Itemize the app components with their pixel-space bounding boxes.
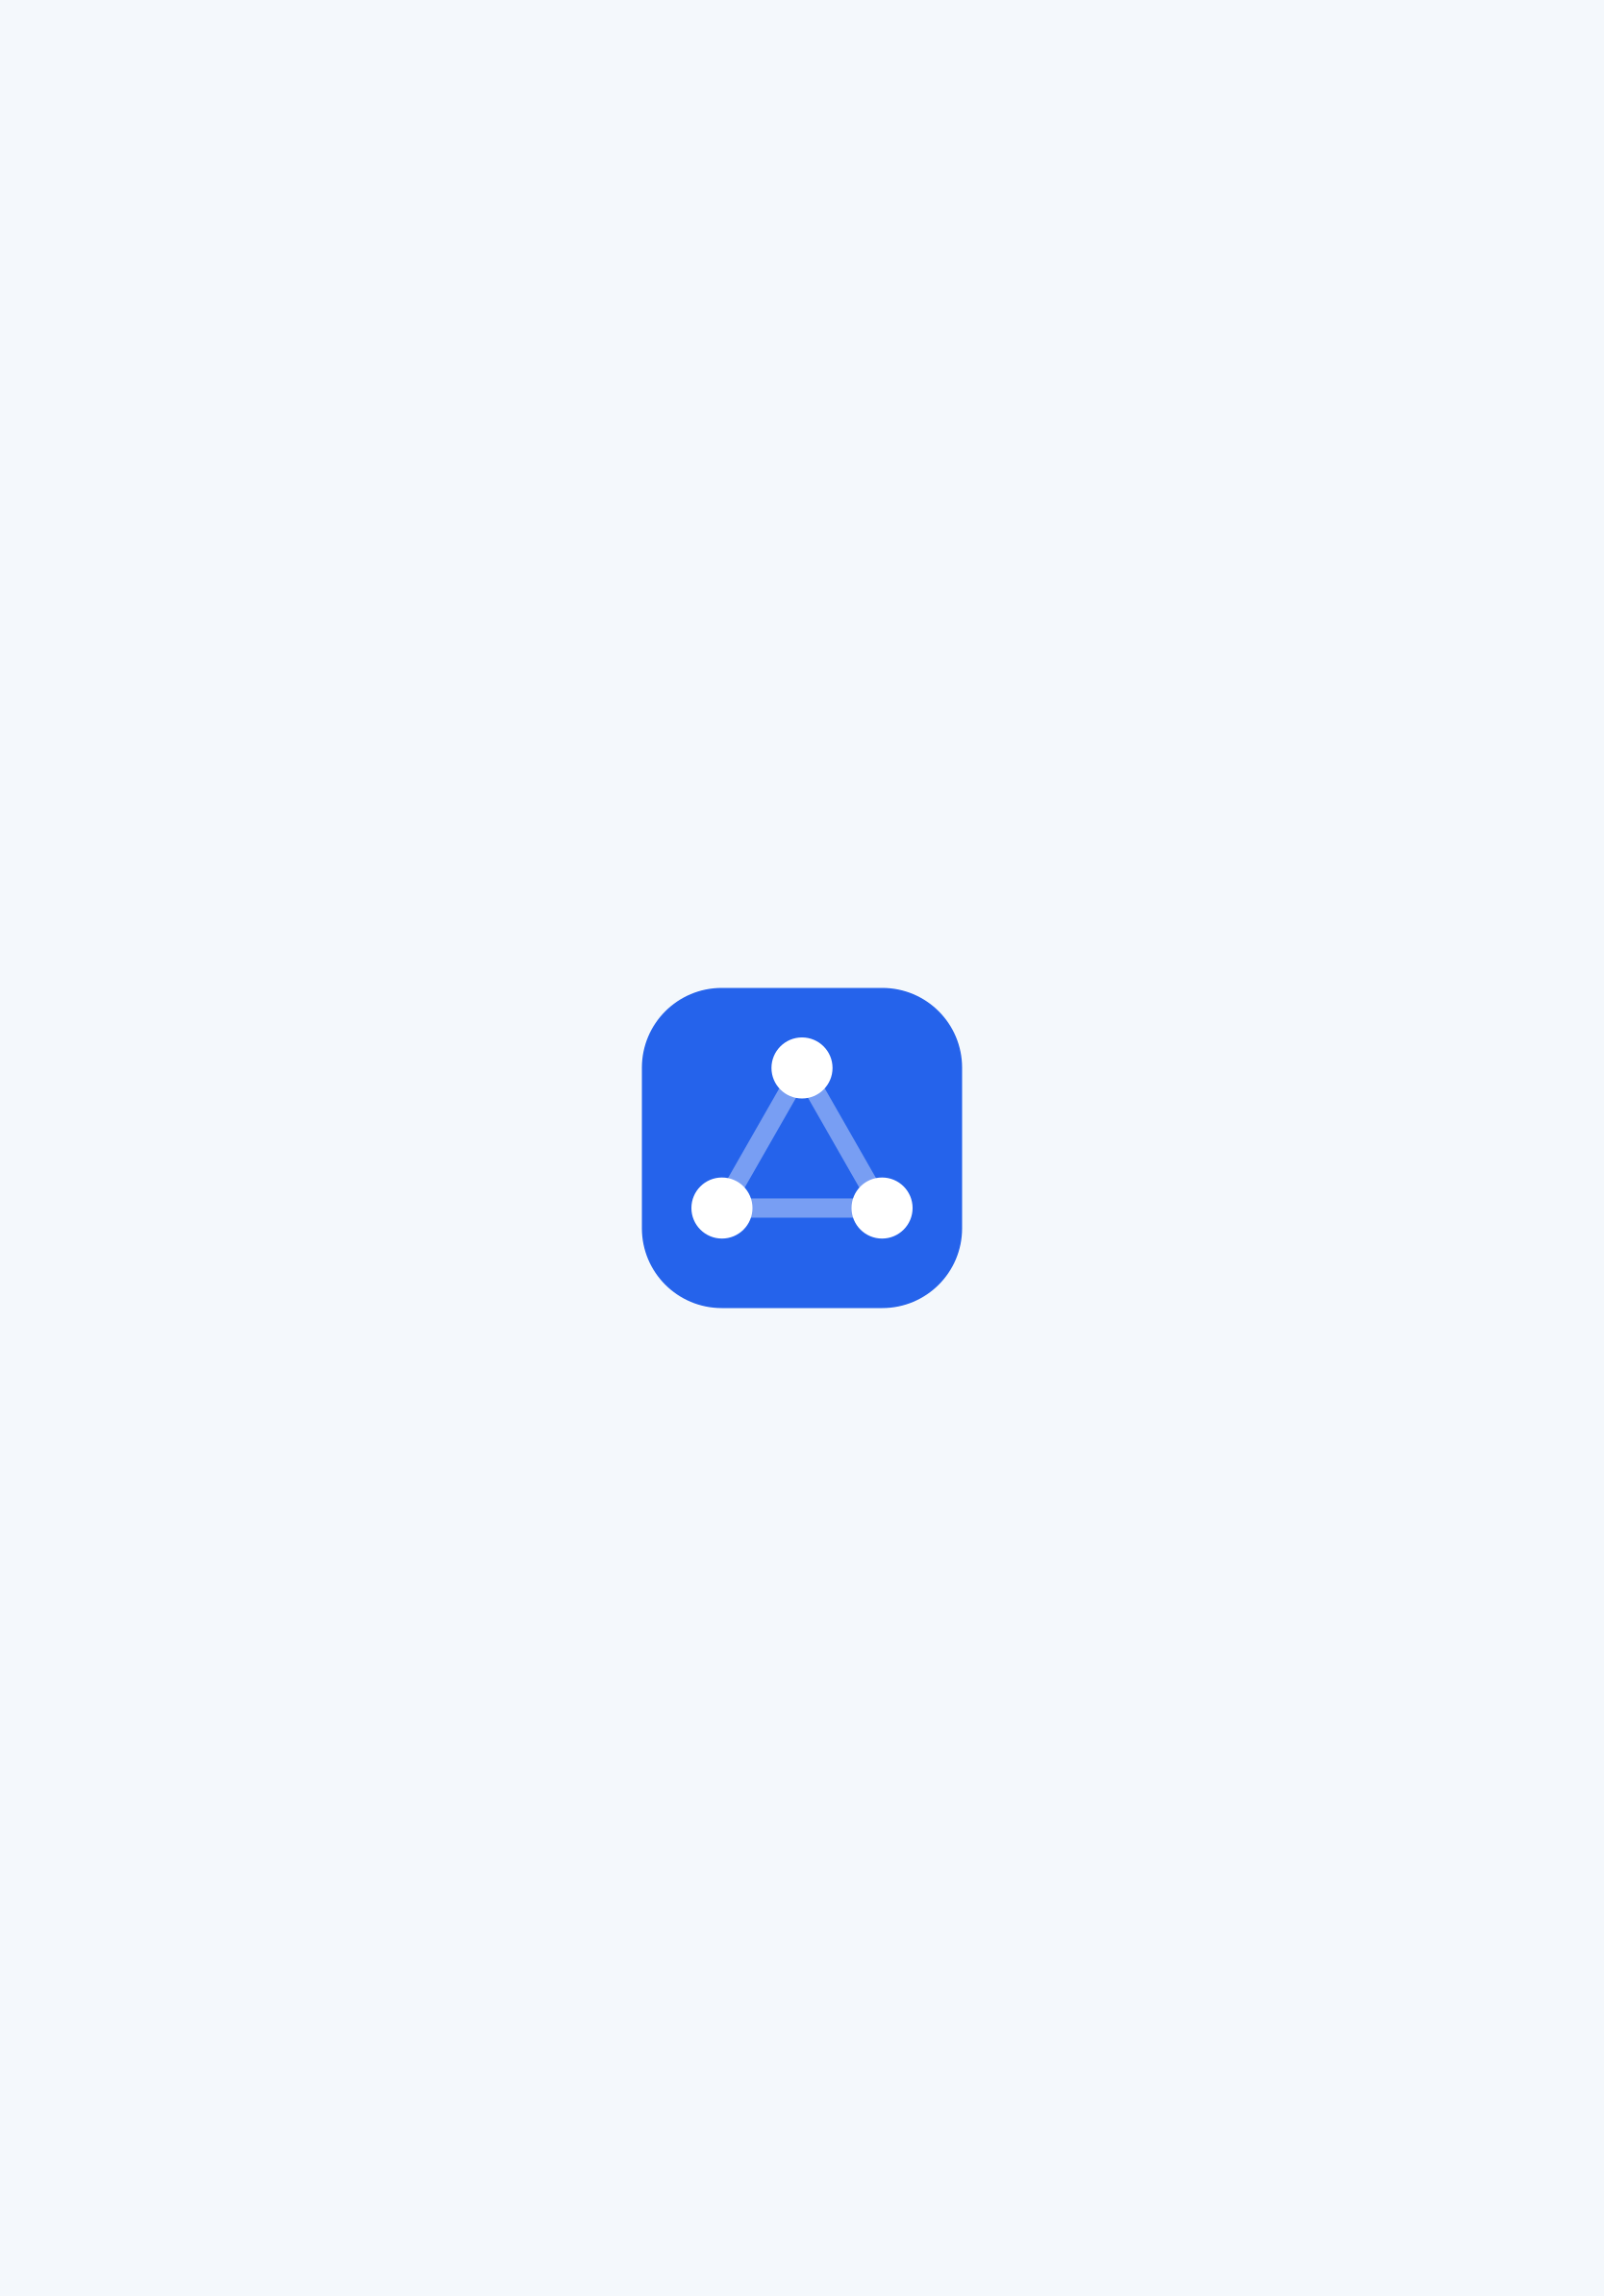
image: App logo [642, 988, 962, 1308]
